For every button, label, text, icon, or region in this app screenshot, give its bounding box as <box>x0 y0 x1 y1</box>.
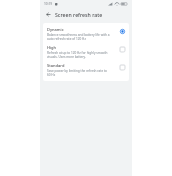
button[interactable]: Dynamic <box>43 25 129 43</box>
button[interactable]: Dynamic selected <box>118 27 126 35</box>
staticText: Dynamic <box>47 27 64 32</box>
button[interactable]: Select High <box>118 45 126 53</box>
staticText: Refresh at up to 120 Hz for highly smoot… <box>47 51 108 59</box>
staticText: Balance smoothness and battery life with… <box>47 33 110 41</box>
button[interactable]: Select Standard <box>118 63 126 71</box>
button[interactable]: Standard <box>43 61 129 79</box>
button[interactable]: Back <box>44 10 53 19</box>
staticText: High <box>47 45 57 50</box>
staticText: Screen refresh rate <box>55 11 103 18</box>
staticText: 10:19 <box>44 2 53 6</box>
staticText: Standard <box>47 63 65 68</box>
button[interactable]: High <box>43 43 129 61</box>
staticText: Save power by limiting the refresh rate … <box>47 69 107 77</box>
